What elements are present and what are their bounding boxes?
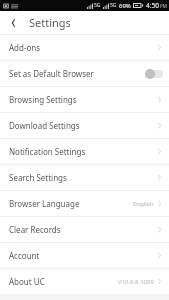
button[interactable]: Add-ons	[0, 35, 169, 60]
staticText: Download Settings	[9, 120, 80, 131]
staticText: Notification Settings	[9, 146, 86, 157]
button[interactable]: About UC	[0, 269, 169, 294]
button[interactable]: Set as Default Browser	[0, 61, 169, 86]
button[interactable]: Account	[0, 243, 169, 268]
staticText: Search Settings	[9, 172, 67, 183]
staticText: Add-ons	[9, 42, 41, 53]
staticText: English	[133, 200, 154, 208]
staticText: 5G	[110, 2, 117, 9]
staticText: Clear Records	[9, 224, 61, 235]
staticText: About UC	[9, 276, 45, 287]
button[interactable]: Notification Settings	[0, 139, 169, 164]
staticText: Settings	[29, 15, 71, 30]
staticText: V10.9.8.1009	[118, 278, 154, 286]
button[interactable]: Set as Default Browser	[145, 69, 163, 79]
button[interactable]: Clear Records	[0, 217, 169, 242]
staticText: Set as Default Browser	[9, 68, 94, 79]
staticText: Browsing Settings	[9, 94, 77, 105]
button[interactable]: Browser Language	[0, 191, 169, 216]
staticText: 69%	[119, 2, 131, 10]
staticText: 5G	[94, 2, 101, 9]
staticText: Browser Language	[9, 198, 80, 209]
staticText: Account	[9, 250, 40, 261]
button[interactable]: Back	[0, 11, 26, 34]
button[interactable]: Search Settings	[0, 165, 169, 190]
staticText: 4:50	[146, 1, 159, 10]
button[interactable]: Download Settings	[0, 113, 169, 138]
button[interactable]: Browsing Settings	[0, 87, 169, 112]
staticText: PM	[160, 3, 167, 9]
